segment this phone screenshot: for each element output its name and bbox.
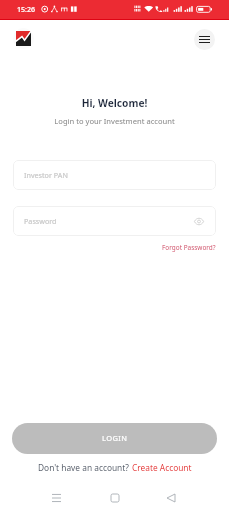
button[interactable]: Back (161, 488, 180, 507)
button[interactable]: Menu (194, 29, 215, 50)
button[interactable]: Forgot Password? (150, 240, 216, 254)
staticText: Don't have an account? (38, 462, 132, 473)
staticText: 15:26 (17, 5, 35, 15)
button[interactable]: LOGIN (12, 423, 217, 454)
button[interactable]: Home (105, 488, 124, 507)
button[interactable]: Password (13, 206, 216, 236)
button[interactable]: App logo (13, 28, 34, 49)
staticText: Password (24, 216, 57, 226)
staticText: Forgot Password? (162, 243, 216, 252)
button[interactable]: Show password (192, 215, 205, 228)
staticText: Create Account (132, 462, 192, 473)
button[interactable]: Create Account (132, 462, 192, 473)
button[interactable]: Recents (47, 488, 66, 507)
staticText: Login to your Investment account (0, 116, 229, 126)
staticText: LOGIN (102, 433, 128, 443)
staticText: Investor PAN (24, 170, 68, 180)
button[interactable]: Investor PAN (13, 160, 216, 190)
staticText: Hi, Welcome! (0, 96, 229, 110)
